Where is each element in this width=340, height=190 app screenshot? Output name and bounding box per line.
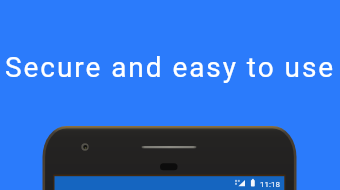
other: Illustration of a phone (0, 0, 340, 190)
staticText: Secure and easy to use (0, 51, 340, 84)
staticText: 11:18 (260, 180, 280, 189)
button[interactable]: Onboarding slide: Secure and easy to use (0, 0, 340, 190)
